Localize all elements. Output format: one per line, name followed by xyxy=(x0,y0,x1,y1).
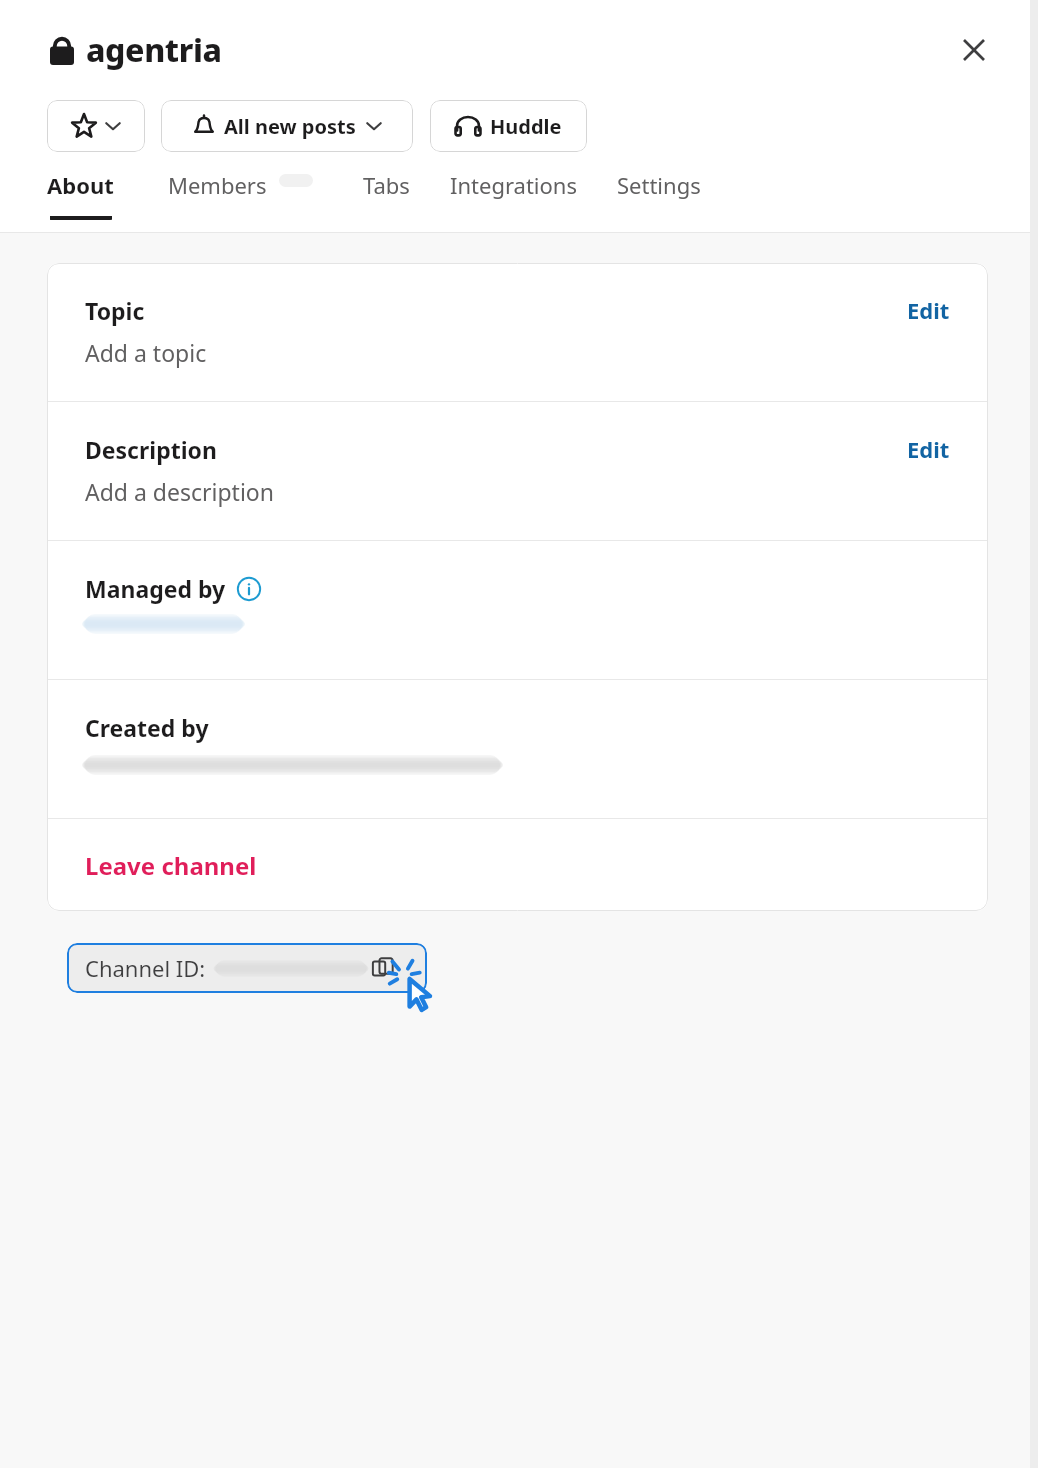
staticText: Members xyxy=(168,170,267,200)
button[interactable]: Integrations xyxy=(450,170,577,216)
button[interactable]: All new posts xyxy=(161,100,413,152)
staticText: Integrations xyxy=(450,170,577,200)
staticText: Description xyxy=(85,434,217,465)
button[interactable] xyxy=(47,100,145,152)
button[interactable]: Edit xyxy=(905,293,952,327)
staticText: Edit xyxy=(907,295,950,325)
button[interactable]: Settings xyxy=(617,170,701,216)
button[interactable]: Created by xyxy=(47,680,988,818)
staticText: Add a description xyxy=(85,476,274,507)
button[interactable]: Edit xyxy=(905,432,952,466)
button[interactable]: Managed by xyxy=(47,541,988,679)
button[interactable]: Huddle xyxy=(430,100,587,152)
staticText: Topic xyxy=(85,295,145,326)
staticText: agentria xyxy=(86,28,222,72)
staticText: Created by xyxy=(85,712,209,743)
staticText: Settings xyxy=(617,170,701,200)
staticText: Managed by xyxy=(85,573,226,604)
staticText: All new posts xyxy=(224,113,356,140)
button[interactable]: Topic xyxy=(47,263,988,401)
button[interactable]: Members xyxy=(168,170,313,216)
button[interactable]: About xyxy=(47,170,114,220)
staticText: Tabs xyxy=(363,170,410,200)
button[interactable]: Leave channel xyxy=(47,819,988,911)
button[interactable]: Close xyxy=(952,28,996,72)
staticText: Huddle xyxy=(490,113,562,140)
other: More info xyxy=(236,576,262,602)
staticText: Add a topic xyxy=(85,337,207,368)
staticText: Edit xyxy=(907,434,950,464)
button[interactable]: Tabs xyxy=(363,170,410,216)
button[interactable]: Description xyxy=(47,402,988,540)
other: Copy channel ID xyxy=(372,957,394,979)
button[interactable]: Channel ID: xyxy=(67,943,427,993)
staticText: About xyxy=(47,170,114,200)
staticText: Channel ID: xyxy=(85,953,206,983)
staticText: Leave channel xyxy=(85,849,257,882)
